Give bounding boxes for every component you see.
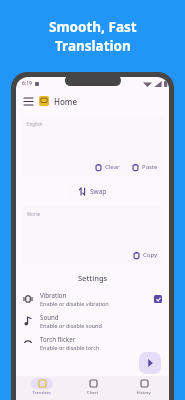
staticText: 6:19 (22, 80, 32, 87)
button[interactable]: English (21, 116, 164, 176)
button[interactable]: Play (139, 352, 161, 374)
button[interactable]: Chart (67, 376, 118, 400)
staticText: Translate (32, 390, 51, 396)
staticText: Morse (27, 211, 41, 217)
staticText: English (27, 121, 43, 127)
staticText: Torch flicker (40, 335, 76, 343)
button[interactable]: Morse (21, 206, 164, 264)
button[interactable]: Torch flicker (16, 335, 169, 351)
button[interactable]: Paste (132, 163, 158, 171)
button[interactable]: Sound (16, 313, 169, 329)
staticText: Enable or disable sound (40, 322, 102, 329)
button[interactable]: Vibration (154, 295, 162, 303)
button[interactable]: Menu (22, 95, 34, 107)
staticText: Swap (90, 187, 107, 196)
staticText: Chart (87, 390, 98, 396)
staticText: Translation (55, 37, 131, 55)
staticText: Clear (105, 163, 120, 171)
staticText: Sound (40, 313, 59, 321)
staticText: Home (54, 96, 78, 107)
button[interactable]: Copy (133, 251, 158, 259)
button[interactable]: History (118, 376, 169, 400)
button[interactable]: Vibration (16, 291, 169, 307)
staticText: Enable or disable vibration (40, 300, 109, 307)
button[interactable]: Swap (66, 183, 120, 200)
staticText: Enable or disable torch (40, 344, 100, 351)
staticText: Smooth, Fast (49, 18, 137, 36)
staticText: Settings (78, 273, 108, 283)
staticText: Copy (143, 251, 158, 259)
staticText: Vibration (40, 291, 67, 299)
staticText: Paste (142, 163, 158, 171)
staticText: History (136, 390, 151, 396)
button[interactable]: Clear (95, 163, 120, 171)
button[interactable]: Translate (16, 376, 67, 400)
